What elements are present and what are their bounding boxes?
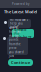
staticText: Continue — [11, 60, 30, 65]
button[interactable]: Continue — [8, 59, 33, 66]
staticText: help you today? — [10, 22, 23, 29]
staticText: Sure — here are — [9, 26, 21, 33]
staticText: Hi! How can I — [10, 18, 28, 22]
staticText: article for me — [14, 35, 32, 39]
staticText: from the piece — [9, 42, 21, 50]
staticText: the key points — [9, 34, 18, 41]
staticText: The Latest Model — [4, 9, 37, 14]
staticText: Powered by — [12, 2, 29, 6]
staticText: a moment ago. — [9, 59, 22, 66]
staticText: Summarise this — [14, 28, 27, 35]
staticText: you shared just — [9, 50, 24, 58]
